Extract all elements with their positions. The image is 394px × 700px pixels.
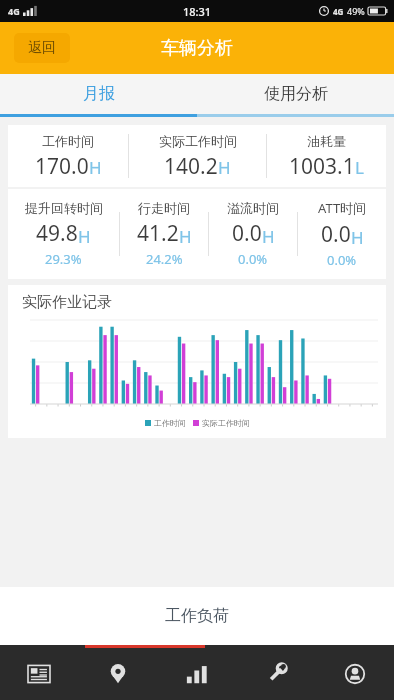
button[interactable]: Tools xyxy=(236,648,315,700)
staticText: 工作时间 xyxy=(154,418,186,428)
staticText: 实际工作时间 xyxy=(202,418,250,428)
staticText: H xyxy=(351,226,364,249)
button[interactable]: 行走时间 xyxy=(120,192,208,276)
button[interactable]: Location xyxy=(78,648,157,700)
staticText: 提升回转时间 xyxy=(25,200,103,216)
staticText: 月报 xyxy=(83,84,115,104)
staticText: 油耗量 xyxy=(307,133,346,149)
button[interactable]: 工作时间 xyxy=(8,125,128,187)
staticText: H xyxy=(218,156,231,179)
staticText: 18:31 xyxy=(183,4,212,19)
staticText: H xyxy=(179,225,192,248)
button[interactable]: 返回 xyxy=(14,33,70,63)
button[interactable]: Account xyxy=(315,648,394,700)
staticText: 49.8 xyxy=(36,219,78,248)
staticText: 4G xyxy=(333,6,344,17)
staticText: 溢流时间 xyxy=(227,200,279,216)
button[interactable]: 使用分析 xyxy=(197,74,394,114)
button[interactable]: News xyxy=(0,648,78,700)
staticText: H xyxy=(89,156,102,179)
staticText: 0.0 xyxy=(232,219,262,248)
button[interactable]: 溢流时间 xyxy=(209,192,297,276)
staticText: 140.2 xyxy=(164,152,218,179)
staticText: 工作负荷 xyxy=(165,606,229,626)
staticText: 实际作业记录 xyxy=(22,293,112,312)
staticText: 0.0 xyxy=(321,220,351,249)
staticText: 工作时间 xyxy=(42,133,94,149)
staticText: 行走时间 xyxy=(138,200,190,216)
staticText: 0.0% xyxy=(327,251,357,269)
staticText: 返回 xyxy=(28,39,56,57)
button[interactable]: 油耗量 xyxy=(267,125,386,187)
staticText: ATT时间 xyxy=(318,199,367,217)
staticText: 使用分析 xyxy=(264,84,328,104)
staticText: H xyxy=(78,225,91,248)
button[interactable]: ATT时间 xyxy=(298,191,386,277)
button[interactable]: 实际工作时间 xyxy=(129,125,266,187)
staticText: 170.0 xyxy=(35,152,89,179)
staticText: 49% xyxy=(347,5,365,17)
staticText: H xyxy=(262,225,275,248)
button[interactable]: 月报 xyxy=(0,74,197,114)
staticText: 实际工作时间 xyxy=(159,133,237,149)
staticText: 4G xyxy=(8,5,20,17)
button[interactable]: 提升回转时间 xyxy=(8,192,119,276)
button[interactable]: Statistics xyxy=(157,648,236,700)
button[interactable]: 工作负荷 xyxy=(0,587,394,645)
staticText: 41.2 xyxy=(137,219,179,248)
staticText: 0.0% xyxy=(238,250,268,268)
staticText: 24.2% xyxy=(146,250,183,268)
staticText: 29.3% xyxy=(45,250,82,268)
staticText: 车辆分析 xyxy=(161,37,233,60)
staticText: 1003.1 xyxy=(289,152,355,179)
staticText: L xyxy=(355,156,364,179)
